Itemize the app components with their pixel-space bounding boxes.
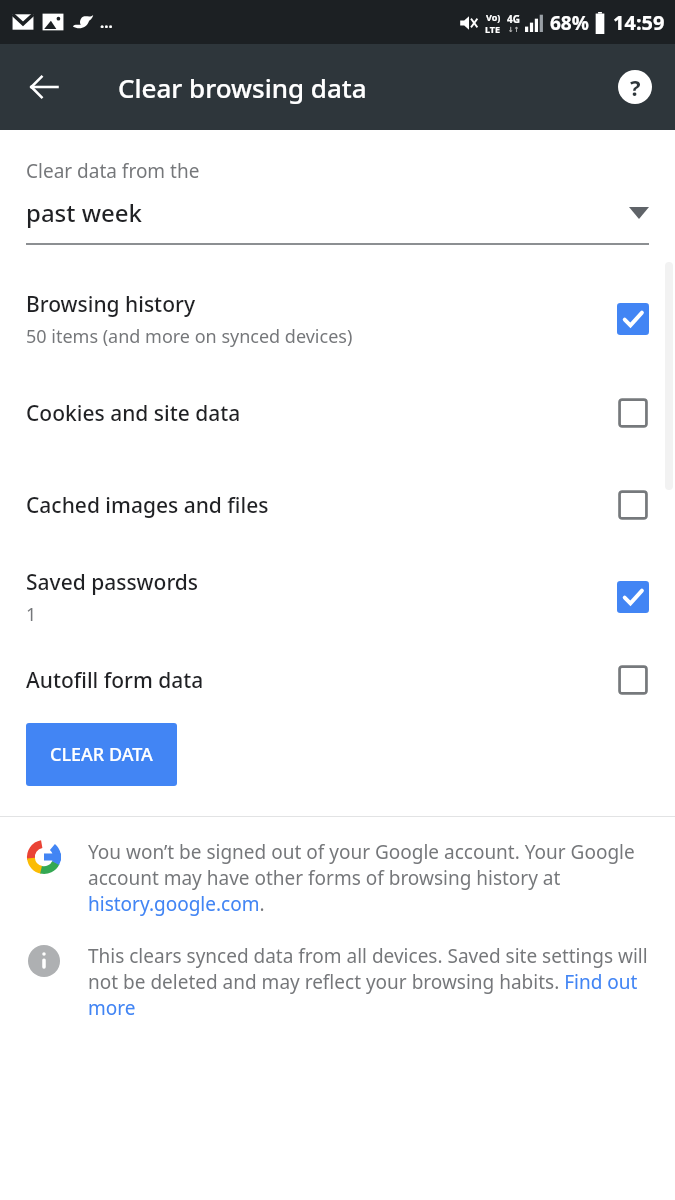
button[interactable]: Cookies and site data: [0, 367, 675, 459]
staticText: CLEAR DATA: [50, 742, 153, 767]
staticText: Clear browsing data: [118, 70, 367, 105]
button[interactable]: Cached images and files: [0, 459, 675, 551]
button[interactable]: Browsing history: [0, 271, 675, 367]
staticText: Cached images and files: [26, 491, 269, 520]
button[interactable]: CLEAR DATA: [26, 723, 177, 786]
staticText: Cookies and site data: [26, 399, 241, 428]
staticText: ?: [630, 72, 641, 102]
staticText: 4G: [507, 12, 520, 26]
staticText: ...: [100, 12, 113, 32]
staticText: Vo): [486, 11, 501, 23]
button[interactable]: Clear data from the: [0, 158, 675, 245]
staticText: 1: [26, 602, 37, 627]
staticText: LTE: [485, 23, 501, 35]
staticText: This clears synced data from all devices…: [88, 943, 651, 1021]
button[interactable]: Back: [16, 59, 72, 115]
staticText: 14:59: [613, 9, 665, 36]
staticText: past week: [26, 196, 143, 229]
staticText: Autofill form data: [26, 666, 204, 695]
staticText: You won’t be signed out of your Google a…: [88, 839, 651, 917]
staticText: 50 items (and more on synced devices): [26, 324, 353, 349]
button[interactable]: Help: [609, 61, 661, 113]
button[interactable]: Saved passwords: [0, 551, 675, 643]
staticText: Saved passwords: [26, 568, 199, 597]
staticText: Clear data from the: [26, 158, 200, 184]
staticText: 68%: [550, 10, 589, 36]
staticText: ↓↑: [508, 26, 520, 34]
staticText: Browsing history: [26, 290, 195, 319]
button[interactable]: Autofill form data: [0, 643, 675, 717]
